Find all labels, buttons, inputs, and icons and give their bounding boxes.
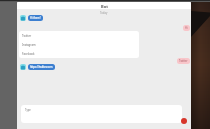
button[interactable]: Instagram bbox=[19, 40, 139, 49]
staticText: Type bbox=[25, 108, 31, 112]
staticText: Hi bbox=[185, 26, 188, 30]
staticText: Today bbox=[100, 11, 108, 15]
staticText: https://twitter.com bbox=[30, 65, 53, 69]
button[interactable]: Type bbox=[21, 105, 182, 123]
staticText: Facebook bbox=[22, 52, 35, 56]
staticText: Twitter bbox=[22, 34, 32, 38]
button[interactable]: Hi bbox=[183, 25, 190, 31]
button[interactable]: https://twitter.com bbox=[28, 64, 55, 70]
staticText: Hi there! bbox=[30, 16, 41, 20]
button[interactable]: Twitter bbox=[177, 58, 190, 64]
staticText: Bot bbox=[101, 4, 108, 9]
staticText: Instagram bbox=[22, 43, 36, 47]
button[interactable]: Hi there! bbox=[28, 15, 43, 21]
button[interactable]: Send bbox=[181, 118, 187, 124]
button[interactable]: Twitter bbox=[19, 31, 139, 40]
button[interactable]: Facebook bbox=[19, 49, 139, 58]
staticText: Twitter bbox=[179, 59, 188, 63]
